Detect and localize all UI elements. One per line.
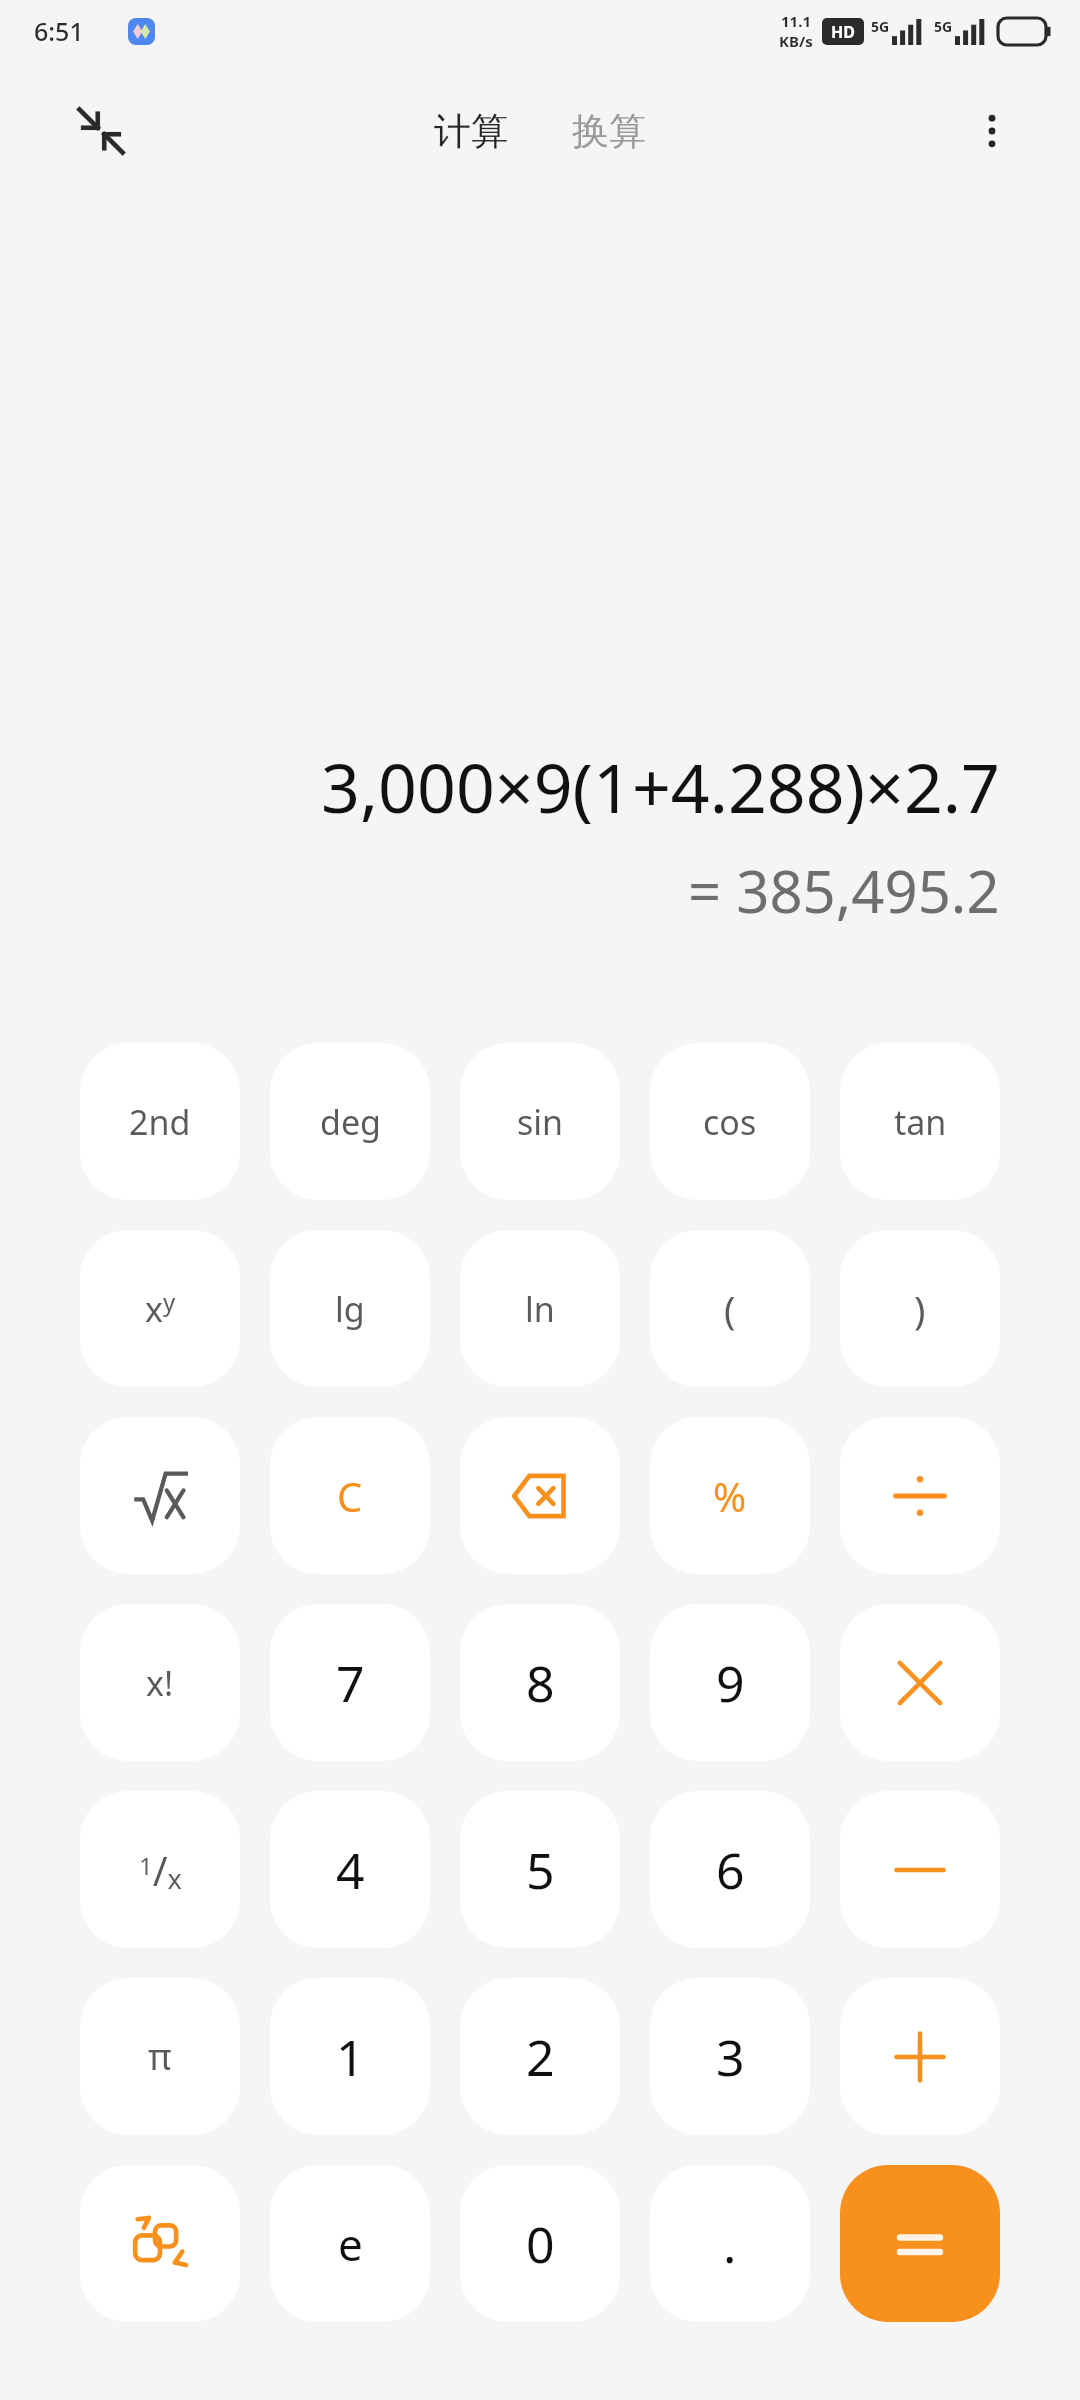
button[interactable]: Equals	[840, 2165, 1000, 2322]
button[interactable]: lg	[270, 1230, 430, 1387]
staticText: 5G	[934, 17, 953, 36]
staticText: %	[713, 1469, 747, 1523]
staticText: 9	[716, 1649, 745, 1717]
button[interactable]: x!	[80, 1604, 240, 1761]
staticText: 1	[336, 2023, 365, 2091]
staticText: 11.1	[781, 11, 811, 31]
staticText: 2nd	[129, 1099, 191, 1145]
staticText: .	[723, 2210, 737, 2278]
button[interactable]: C	[270, 1417, 430, 1574]
staticText: 5	[526, 1836, 555, 1904]
staticText: KB/s	[779, 31, 813, 51]
button[interactable]: 9	[650, 1604, 810, 1761]
staticText: C	[337, 1469, 363, 1523]
button[interactable]: (	[650, 1230, 810, 1387]
button[interactable]: %	[650, 1417, 810, 1574]
staticText: deg	[320, 1099, 381, 1145]
staticText: 换算	[572, 108, 646, 155]
button[interactable]: π	[80, 1978, 240, 2135]
staticText: cos	[703, 1099, 757, 1145]
button[interactable]: 2	[460, 1978, 620, 2135]
staticText: = 385,495.2	[688, 851, 1000, 930]
button[interactable]: e	[270, 2165, 430, 2322]
staticText: 7	[336, 1649, 365, 1717]
button[interactable]: tan	[840, 1043, 1000, 1200]
staticText: 8	[526, 1649, 555, 1717]
button[interactable]: 8	[460, 1604, 620, 1761]
button[interactable]: 5	[460, 1791, 620, 1948]
staticText: 6	[716, 1836, 745, 1904]
button[interactable]: ln	[460, 1230, 620, 1387]
staticText: x!	[146, 1660, 174, 1706]
button[interactable]: Multiply	[840, 1604, 1000, 1761]
staticText: sin	[517, 1099, 564, 1145]
staticText: 6:51	[34, 14, 84, 48]
button[interactable]: 1	[270, 1978, 430, 2135]
button[interactable]: sin	[460, 1043, 620, 1200]
button[interactable]: Handwriting mode	[80, 2165, 240, 2322]
button[interactable]: xy	[80, 1230, 240, 1387]
button[interactable]: deg	[270, 1043, 430, 1200]
button[interactable]: .	[650, 2165, 810, 2322]
button[interactable]: 6	[650, 1791, 810, 1948]
staticText: tan	[894, 1099, 947, 1145]
staticText: 计算	[434, 108, 508, 155]
button[interactable]: Collapse	[58, 88, 144, 174]
button[interactable]: More options	[952, 91, 1032, 171]
button[interactable]: 1/x	[80, 1791, 240, 1948]
button[interactable]: 计算	[418, 98, 524, 165]
button[interactable]: 3	[650, 1978, 810, 2135]
button[interactable]: Backspace	[460, 1417, 620, 1574]
button[interactable]: 0	[460, 2165, 620, 2322]
staticText: 1/x	[139, 1843, 182, 1897]
button[interactable]: cos	[650, 1043, 810, 1200]
staticText: 0	[526, 2210, 555, 2278]
staticText: 4	[336, 1836, 365, 1904]
staticText: e	[338, 2214, 363, 2274]
button[interactable]: 换算	[556, 98, 662, 165]
staticText: 3,000×9(1+4.288)×2.7	[321, 740, 1000, 833]
staticText: ln	[525, 1286, 555, 1332]
staticText: lg	[335, 1286, 365, 1332]
button[interactable]: Square root	[80, 1417, 240, 1574]
staticText: 5G	[871, 17, 890, 36]
staticText: 2	[526, 2023, 555, 2091]
staticText: π	[148, 2032, 172, 2081]
staticText: )	[914, 1283, 926, 1335]
staticText: (	[724, 1283, 736, 1335]
button[interactable]: Divide	[840, 1417, 1000, 1574]
button[interactable]: 2nd	[80, 1043, 240, 1200]
button[interactable]: 7	[270, 1604, 430, 1761]
button[interactable]: 4	[270, 1791, 430, 1948]
button[interactable]: Add	[840, 1978, 1000, 2135]
staticText: xy	[145, 1285, 176, 1332]
staticText: HD	[831, 21, 855, 43]
button[interactable]: )	[840, 1230, 1000, 1387]
button[interactable]: Subtract	[840, 1791, 1000, 1948]
staticText: 3	[716, 2023, 745, 2091]
